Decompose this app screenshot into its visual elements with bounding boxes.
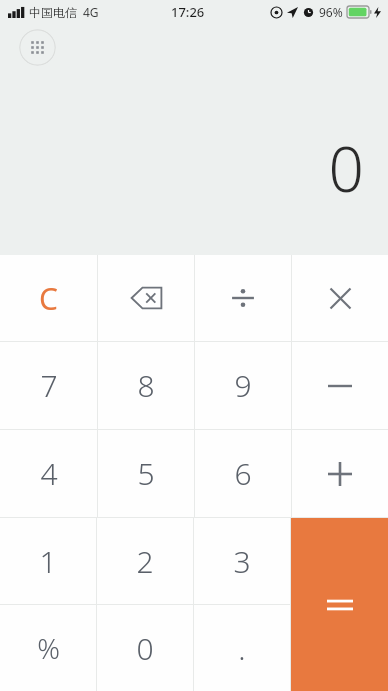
staticText: 5 bbox=[137, 453, 155, 494]
button[interactable]: Divide bbox=[195, 255, 291, 341]
button[interactable]: 5 bbox=[98, 430, 194, 517]
staticText: 6 bbox=[234, 453, 252, 494]
staticText: 17:26 bbox=[171, 3, 205, 21]
staticText: % bbox=[37, 629, 60, 667]
staticText: 7 bbox=[40, 365, 58, 406]
button[interactable]: 3 bbox=[194, 518, 290, 604]
button[interactable]: 8 bbox=[98, 342, 194, 429]
staticText: 4G bbox=[83, 4, 99, 20]
button[interactable]: Minus bbox=[292, 342, 388, 429]
button[interactable]: Apps bbox=[19, 29, 56, 66]
button[interactable]: 1 bbox=[0, 518, 96, 604]
staticText: 3 bbox=[233, 541, 251, 582]
button[interactable]: 7 bbox=[0, 342, 97, 429]
button[interactable]: % bbox=[0, 605, 96, 691]
staticText: . bbox=[238, 628, 246, 669]
button[interactable]: Equals bbox=[291, 518, 388, 691]
button[interactable]: C bbox=[0, 255, 97, 341]
staticText: 8 bbox=[137, 365, 155, 406]
button[interactable]: Backspace bbox=[98, 255, 194, 341]
button[interactable]: 6 bbox=[195, 430, 291, 517]
staticText: 1 bbox=[39, 541, 57, 582]
button[interactable]: Plus bbox=[292, 430, 388, 517]
staticText: 4 bbox=[40, 453, 58, 494]
button[interactable]: Multiply bbox=[292, 255, 388, 341]
staticText: 2 bbox=[136, 541, 154, 582]
staticText: 0 bbox=[328, 126, 364, 210]
button[interactable]: 2 bbox=[97, 518, 193, 604]
staticText: C bbox=[39, 278, 58, 319]
staticText: 96% bbox=[319, 4, 343, 20]
button[interactable]: 0 bbox=[97, 605, 193, 691]
button[interactable]: 9 bbox=[195, 342, 291, 429]
staticText: 0 bbox=[136, 628, 154, 669]
button[interactable]: 4 bbox=[0, 430, 97, 517]
staticText: 中国电信 bbox=[29, 5, 77, 20]
button[interactable]: . bbox=[194, 605, 290, 691]
staticText: 9 bbox=[234, 365, 252, 406]
